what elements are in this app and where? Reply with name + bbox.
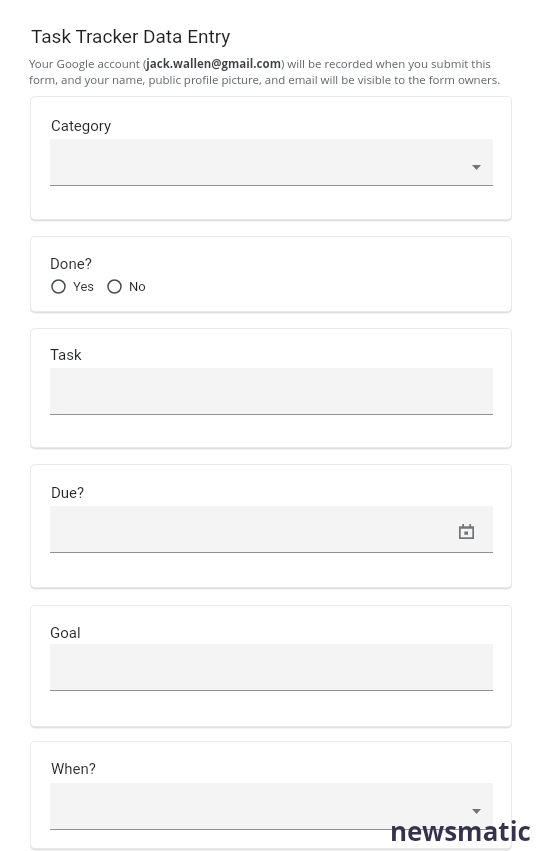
button[interactable] [50, 644, 493, 691]
button[interactable]: Open dropdown [50, 783, 493, 830]
button[interactable]: Pick date [50, 506, 493, 553]
staticText: Category [51, 117, 112, 135]
staticText: No [129, 279, 146, 294]
staticText: Task [50, 346, 82, 364]
staticText: When? [51, 760, 96, 778]
button[interactable] [50, 368, 493, 415]
staticText: newsmatic [390, 813, 531, 848]
staticText: Goal [50, 624, 81, 642]
button[interactable]: No [107, 279, 146, 294]
staticText: Yes [73, 279, 94, 294]
staticText: Due? [51, 484, 85, 502]
staticText: Your Google account (jack.wallen@gmail.c… [29, 56, 507, 88]
staticText: Done? [50, 255, 92, 273]
staticText: Task Tracker Data Entry [31, 25, 231, 47]
button[interactable]: Open dropdown [50, 139, 493, 186]
button[interactable]: Yes [51, 279, 94, 294]
